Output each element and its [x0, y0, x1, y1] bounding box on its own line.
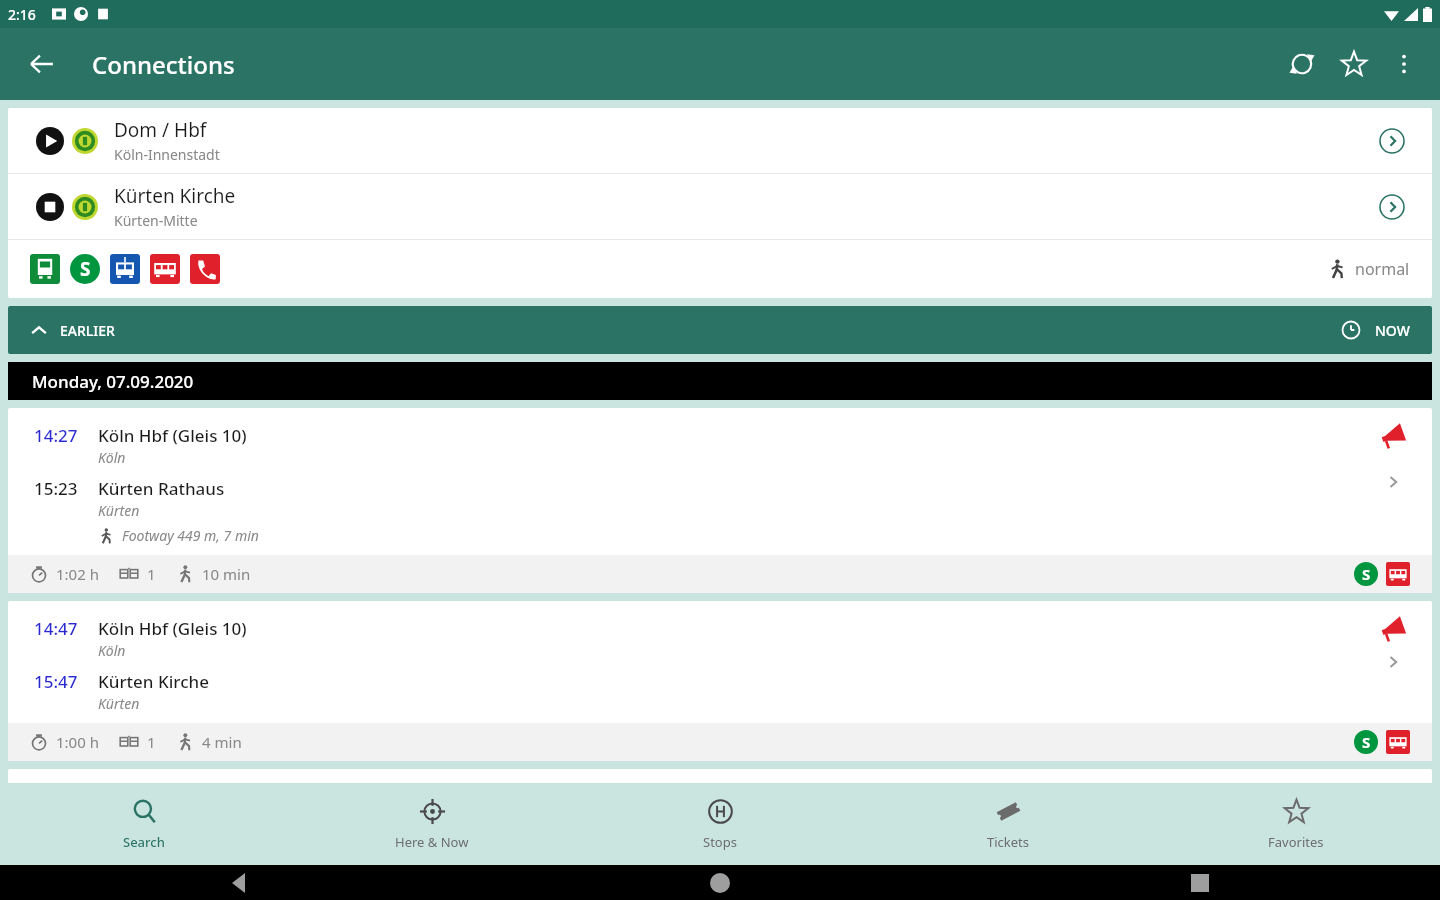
button[interactable]: Favorite [1328, 38, 1380, 90]
staticText: Köln [98, 448, 126, 467]
staticText: Kürten [98, 501, 140, 520]
staticText: Kürten Rathaus [98, 477, 225, 500]
staticText: Connections [92, 48, 235, 81]
staticText: 2:16 [8, 5, 36, 24]
staticText: 1 [147, 564, 156, 584]
staticText: Kürten Kirche [98, 670, 209, 693]
staticText: 1:02 h [56, 564, 99, 584]
button[interactable]: NOW [1341, 320, 1410, 340]
button[interactable]: Favorites [1152, 783, 1440, 865]
staticText: 1 [147, 732, 156, 752]
staticText: S [1362, 564, 1371, 584]
staticText: Kürten-Mitte [114, 211, 198, 230]
staticText: NOW [1375, 321, 1410, 340]
button[interactable]: Tickets [864, 783, 1152, 865]
staticText: Favorites [1268, 833, 1324, 851]
staticText: 15:23 [34, 477, 88, 500]
staticText: S [80, 256, 91, 282]
staticText: Kürten Kirche [114, 183, 236, 209]
button[interactable]: 14:47 [8, 601, 1432, 761]
staticText: Köln-Innenstadt [114, 145, 220, 164]
staticText: Dom / Hbf [114, 117, 207, 143]
button[interactable]: Stops [576, 783, 864, 865]
staticText: normal [1355, 258, 1410, 280]
button[interactable]: Service alert [1378, 420, 1410, 452]
button[interactable]: Kürten Kirche [8, 174, 1432, 239]
staticText: Kürten [98, 694, 140, 713]
staticText: 1:00 h [56, 732, 99, 752]
button[interactable]: Back [18, 40, 66, 88]
staticText: 14:47 [34, 617, 88, 640]
button[interactable]: Search [0, 783, 288, 865]
staticText: EARLIER [60, 321, 115, 340]
button[interactable]: Here & Now [288, 783, 576, 865]
staticText: Footway 449 m, 7 min [122, 526, 259, 545]
button[interactable]: Open stop details [1376, 191, 1408, 223]
button[interactable]: Service alert [1378, 613, 1410, 645]
staticText: Monday, 07.09.2020 [32, 370, 194, 393]
staticText: 4 min [202, 732, 242, 752]
staticText: Köln [98, 641, 126, 660]
staticText: Tickets [987, 833, 1030, 851]
staticText: 14:27 [34, 424, 88, 447]
staticText: Search [123, 833, 165, 851]
staticText: Stops [703, 833, 737, 851]
staticText: 10 min [202, 564, 251, 584]
staticText: Köln Hbf (Gleis 10) [98, 617, 247, 640]
staticText: S [1362, 732, 1371, 752]
staticText: 15:47 [34, 670, 88, 693]
button[interactable]: EARLIER [30, 321, 115, 340]
button[interactable]: 14:27 [8, 408, 1432, 593]
button[interactable]: More options [1380, 40, 1428, 88]
staticText: Köln Hbf (Gleis 10) [98, 424, 247, 447]
button[interactable]: Refresh [1276, 38, 1328, 90]
staticText: Here & Now [395, 833, 469, 851]
button[interactable]: Dom / Hbf [8, 108, 1432, 173]
button[interactable]: Open stop details [1376, 125, 1408, 157]
